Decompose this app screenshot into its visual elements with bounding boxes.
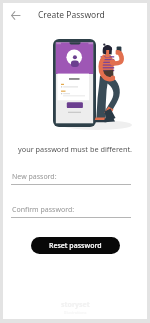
staticText: Create Password bbox=[38, 9, 105, 21]
staticText: Confirm password: bbox=[12, 205, 75, 215]
staticText: New passord: bbox=[12, 172, 57, 182]
staticText: your password must be different. bbox=[18, 144, 132, 154]
button[interactable]: Reset password bbox=[31, 237, 120, 254]
staticText: Reset password bbox=[49, 241, 102, 251]
staticText: storyset bbox=[61, 300, 90, 310]
button[interactable]: Back bbox=[3, 3, 27, 27]
